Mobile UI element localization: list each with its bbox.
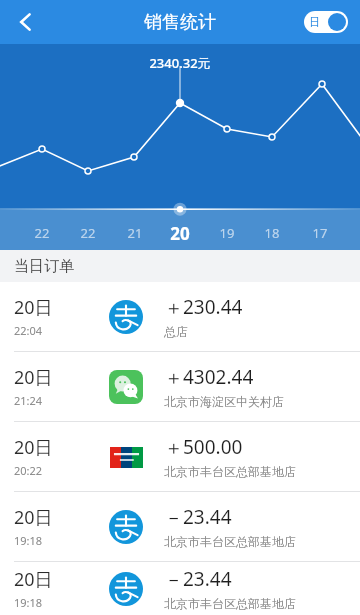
staticText: 日 <box>309 15 320 29</box>
button[interactable]: 22 <box>68 224 108 242</box>
button[interactable]: 21 <box>115 224 155 242</box>
staticText: 销售统计 <box>144 11 216 34</box>
button[interactable]: 18 <box>252 224 292 242</box>
button[interactable]: Back <box>4 0 48 44</box>
staticText: ＋500.00 <box>164 434 243 460</box>
staticText: 总店 <box>164 324 188 339</box>
staticText: 20日 <box>14 365 53 390</box>
button[interactable]: 20日 <box>0 282 360 351</box>
staticText: －23.44 <box>164 504 232 530</box>
staticText: 20日 <box>14 435 53 460</box>
button[interactable]: 20日 <box>0 352 360 421</box>
staticText: 当日订单 <box>14 257 74 276</box>
button[interactable]: 20日 <box>0 492 360 561</box>
staticText: 20日 <box>14 295 53 320</box>
button[interactable]: 22 <box>22 224 62 242</box>
staticText: ＋4302.44 <box>164 364 254 390</box>
button[interactable]: Switch day or week <box>304 11 348 33</box>
staticText: 19:18 <box>14 595 43 610</box>
staticText: 北京市海淀区中关村店 <box>164 394 284 409</box>
staticText: 20日 <box>14 567 53 592</box>
staticText: 北京市丰台区总部基地店 <box>164 534 296 549</box>
staticText: 北京市丰台区总部基地店 <box>164 464 296 479</box>
staticText: 北京市丰台区总部基地店 <box>164 596 296 611</box>
staticText: 2340.32元 <box>140 54 220 72</box>
button[interactable]: 17 <box>300 224 340 242</box>
staticText: 20:22 <box>14 463 43 478</box>
staticText: ＋230.44 <box>164 294 243 320</box>
staticText: 20日 <box>14 505 53 530</box>
staticText: 22:04 <box>14 323 43 338</box>
button[interactable]: 20日 <box>0 422 360 491</box>
staticText: 19:18 <box>14 533 43 548</box>
button[interactable]: 20日 <box>0 562 360 615</box>
staticText: －23.44 <box>164 566 232 592</box>
button[interactable]: 20 <box>160 222 200 245</box>
button[interactable]: 19 <box>207 224 247 242</box>
staticText: 21:24 <box>14 393 43 408</box>
